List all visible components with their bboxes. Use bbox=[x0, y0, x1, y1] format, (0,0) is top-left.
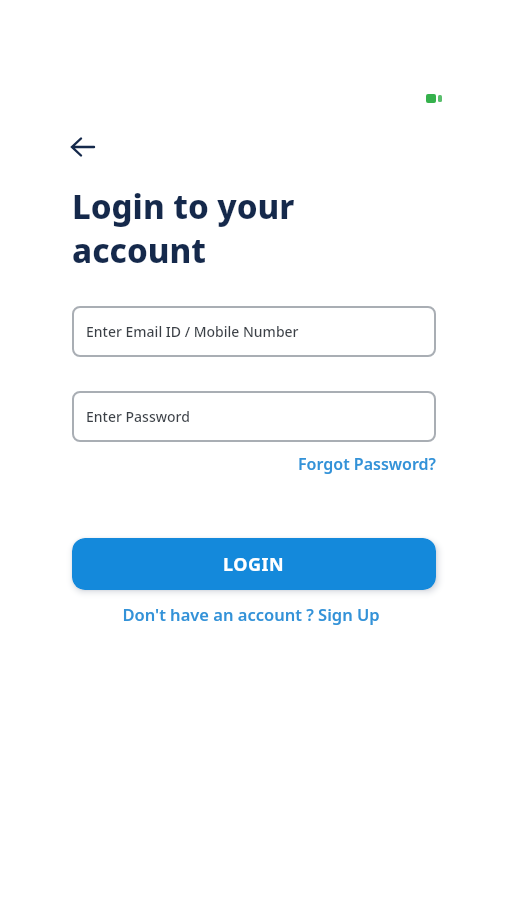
staticText: Enter Password bbox=[86, 407, 190, 426]
button[interactable] bbox=[62, 128, 102, 166]
staticText: Don't have an account ? Sign Up bbox=[122, 603, 380, 625]
button[interactable]: Forgot Password? bbox=[286, 452, 436, 476]
staticText: Enter Email ID / Mobile Number bbox=[86, 322, 299, 341]
button[interactable]: Enter Email ID / Mobile Number bbox=[72, 306, 436, 357]
button[interactable]: Enter Password bbox=[72, 391, 436, 442]
staticText: LOGIN bbox=[223, 552, 285, 577]
button[interactable]: Don't have an account ? Sign Up bbox=[122, 603, 380, 625]
staticText: Forgot Password? bbox=[298, 453, 436, 475]
button[interactable]: LOGIN bbox=[72, 538, 436, 590]
staticText: Login to your account bbox=[72, 184, 295, 272]
